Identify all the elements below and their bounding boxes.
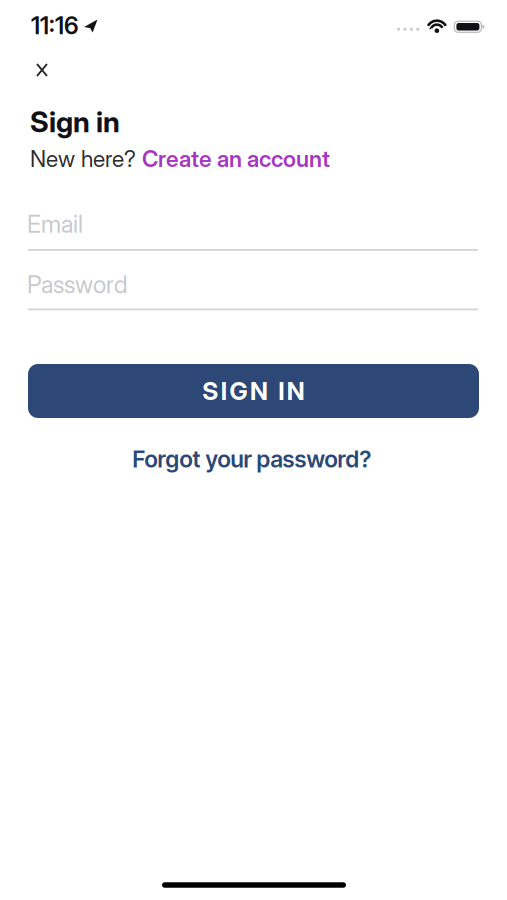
button[interactable]: Create an account [142, 145, 330, 172]
staticText: SIGN IN [202, 376, 305, 406]
staticText: 11:16 [31, 11, 79, 40]
button[interactable]: SIGN IN [28, 364, 479, 418]
staticText: New here? [30, 145, 142, 172]
staticText: Create an account [142, 145, 330, 172]
staticText: Forgot your password? [132, 445, 371, 473]
staticText: Sign in [30, 104, 120, 139]
button[interactable]: Forgot your password? [132, 445, 371, 473]
staticText: Password [27, 270, 128, 299]
button[interactable] [29, 56, 55, 84]
staticText: Email [27, 209, 83, 238]
